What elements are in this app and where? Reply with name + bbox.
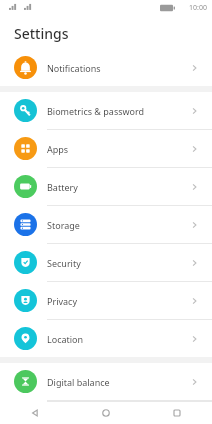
- staticText: Biometrics & password: [47, 105, 190, 117]
- staticText: Storage: [47, 219, 190, 231]
- button[interactable]: Security: [0, 244, 212, 281]
- staticText: Battery: [47, 181, 190, 193]
- button[interactable]: Notifications: [0, 49, 212, 86]
- staticText: Apps: [47, 143, 190, 155]
- button[interactable]: Apps: [0, 130, 212, 167]
- button[interactable]: Digital balance: [0, 363, 212, 400]
- button[interactable]: Biometrics & password: [0, 92, 212, 129]
- staticText: Privacy: [47, 295, 190, 307]
- button[interactable]: Storage: [0, 206, 212, 243]
- button[interactable]: Privacy: [0, 282, 212, 319]
- staticText: Settings: [14, 24, 69, 43]
- staticText: Location: [47, 333, 190, 345]
- staticText: 10:00: [189, 3, 207, 13]
- button[interactable]: Location: [0, 320, 212, 357]
- button[interactable]: Battery: [0, 168, 212, 205]
- button[interactable]: Home: [70, 407, 141, 419]
- staticText: Security: [47, 257, 190, 269]
- button[interactable]: Recent apps: [141, 407, 212, 419]
- button[interactable]: Back: [0, 407, 70, 419]
- staticText: Digital balance: [47, 376, 190, 388]
- staticText: Notifications: [47, 62, 190, 74]
